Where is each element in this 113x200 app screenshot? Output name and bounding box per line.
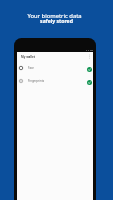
staticText: Face <box>28 66 34 70</box>
staticText: Fingerprints <box>28 79 45 83</box>
button[interactable]: Fingerprints <box>19 74 92 87</box>
staticText: safely stored <box>40 18 73 25</box>
button[interactable]: Face <box>19 61 92 74</box>
button[interactable]: More options <box>87 54 92 59</box>
staticText: My wallet <box>21 55 36 59</box>
staticText: Your biometric data <box>27 12 82 20</box>
